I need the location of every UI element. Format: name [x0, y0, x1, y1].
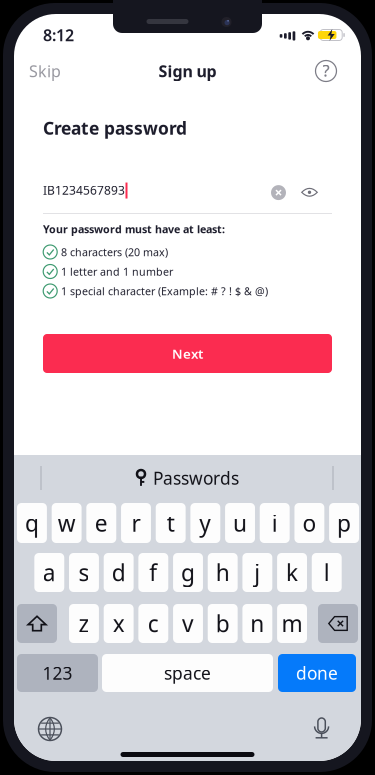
staticText: IB1234567893 — [43, 182, 125, 198]
button[interactable]: Dictation — [302, 712, 342, 746]
staticText: Passwords — [153, 466, 239, 489]
staticText: m — [281, 608, 302, 638]
staticText: x — [113, 608, 125, 638]
staticText: e — [95, 508, 108, 538]
button[interactable]: k — [277, 553, 307, 592]
staticText: d — [112, 557, 126, 587]
button[interactable]: Next keyboard — [30, 712, 70, 746]
button[interactable]: b — [208, 604, 238, 643]
button[interactable]: Help — [307, 54, 345, 88]
staticText: u — [233, 508, 247, 538]
staticText: 1 special character (Example: # ? ! $ & … — [61, 284, 268, 298]
staticText: 123 — [42, 661, 72, 684]
button[interactable]: h — [208, 553, 238, 592]
staticText: z — [78, 608, 89, 638]
staticText: p — [337, 508, 351, 538]
staticText: l — [324, 557, 330, 587]
button[interactable]: q — [17, 503, 47, 543]
button[interactable]: m — [277, 604, 307, 643]
button[interactable]: f — [138, 553, 168, 592]
staticText: t — [167, 508, 175, 538]
staticText: y — [199, 508, 211, 538]
staticText: h — [216, 557, 230, 587]
button[interactable]: Skip — [29, 54, 81, 88]
staticText: 1 letter and 1 number — [61, 264, 173, 279]
button[interactable]: t — [156, 503, 186, 543]
button[interactable]: y — [190, 503, 220, 543]
staticText: o — [302, 508, 316, 538]
button[interactable]: a — [34, 553, 64, 592]
button[interactable]: l — [312, 553, 342, 592]
button[interactable]: r — [121, 503, 151, 543]
button[interactable]: Delete — [318, 604, 358, 643]
staticText: b — [216, 608, 230, 638]
button[interactable]: v — [173, 604, 203, 643]
button[interactable]: c — [138, 604, 168, 643]
staticText: 8 characters (20 max) — [61, 245, 168, 259]
staticText: i — [272, 508, 278, 538]
button[interactable]: z — [69, 604, 99, 643]
staticText: Skip — [29, 60, 61, 82]
staticText: 8:12 — [43, 24, 74, 46]
button[interactable]: x — [104, 604, 134, 643]
button[interactable]: n — [242, 604, 272, 643]
button[interactable]: p — [329, 503, 359, 543]
button[interactable]: 123 — [17, 654, 98, 692]
staticText: done — [296, 661, 338, 684]
staticText: g — [181, 557, 195, 587]
button[interactable]: space — [102, 654, 273, 692]
staticText: q — [25, 508, 39, 538]
staticText: space — [164, 661, 211, 684]
staticText: c — [148, 608, 159, 638]
button[interactable]: Show password — [297, 181, 321, 203]
button[interactable]: Next — [43, 334, 332, 373]
staticText: r — [131, 508, 140, 538]
button[interactable]: s — [69, 553, 99, 592]
button[interactable]: j — [242, 553, 272, 592]
staticText: n — [250, 608, 264, 638]
button[interactable]: i — [260, 503, 290, 543]
button[interactable]: u — [225, 503, 255, 543]
button[interactable]: e — [86, 503, 116, 543]
button[interactable]: g — [173, 553, 203, 592]
button[interactable]: w — [52, 503, 82, 543]
staticText: j — [254, 557, 260, 587]
staticText: w — [58, 508, 76, 538]
button[interactable]: d — [104, 553, 134, 592]
staticText: s — [78, 557, 89, 587]
button[interactable]: Clear text — [266, 182, 290, 204]
staticText: f — [149, 557, 157, 587]
button[interactable]: Passwords — [112, 458, 262, 498]
staticText: Your password must have at least: — [43, 222, 225, 236]
staticText: v — [182, 608, 194, 638]
button[interactable]: Shift — [17, 604, 57, 643]
staticText: ? — [322, 60, 329, 81]
staticText: Sign up — [158, 60, 216, 82]
staticText: Next — [172, 345, 203, 362]
staticText: Create password — [43, 116, 187, 139]
button[interactable]: o — [294, 503, 324, 543]
staticText: k — [286, 557, 298, 587]
staticText: a — [43, 557, 56, 587]
button[interactable]: done — [278, 654, 356, 692]
